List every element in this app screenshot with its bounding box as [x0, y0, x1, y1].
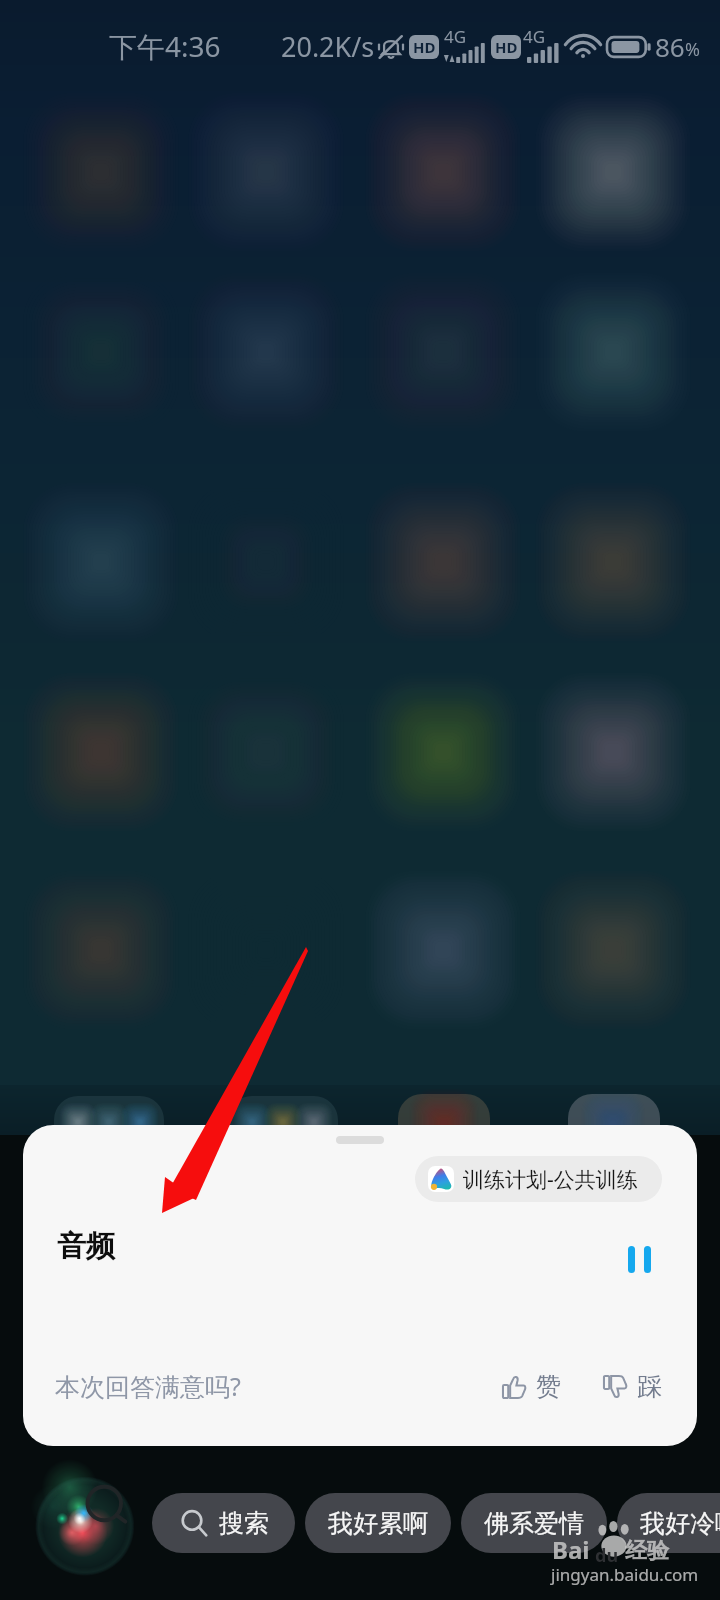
button[interactable]: 搜索 — [152, 1493, 295, 1553]
staticText: 86 — [655, 29, 685, 64]
staticText: 我好累啊 — [328, 1508, 428, 1539]
button[interactable]: 训练计划-公共训练 — [415, 1156, 662, 1202]
staticText: jingyan.baidu.com — [551, 1563, 699, 1586]
staticText: 搜索 — [219, 1508, 269, 1539]
staticText: 佛系爱情 — [484, 1508, 584, 1539]
staticText: HD — [495, 37, 518, 57]
staticText: % — [685, 37, 700, 62]
staticText: 踩 — [637, 1371, 662, 1402]
button[interactable]: Voice assistant — [33, 1470, 141, 1578]
staticText: 下午4:36 — [109, 27, 221, 65]
staticText: 本次回答满意吗? — [55, 1369, 241, 1403]
staticText: 音频 — [57, 1228, 115, 1265]
staticText: 我好冷啊 — [640, 1508, 720, 1539]
button[interactable]: 我好冷啊 — [617, 1493, 720, 1553]
staticText: 4G — [444, 25, 467, 48]
button[interactable]: 佛系爱情 — [461, 1493, 607, 1553]
button[interactable]: 赞 — [496, 1363, 567, 1410]
staticText: 经验 — [625, 1537, 669, 1565]
staticText: du — [595, 1543, 619, 1565]
button[interactable]: Pause — [609, 1229, 669, 1289]
button[interactable]: 我好累啊 — [305, 1493, 451, 1553]
staticText: 训练计划-公共训练 — [463, 1165, 638, 1194]
staticText: 4G — [523, 25, 546, 48]
staticText: 赞 — [536, 1371, 561, 1402]
staticText: Bai — [552, 1533, 590, 1566]
staticText: 20.2K/s — [281, 28, 375, 65]
button[interactable]: 踩 — [597, 1363, 668, 1410]
staticText: HD — [413, 37, 436, 57]
